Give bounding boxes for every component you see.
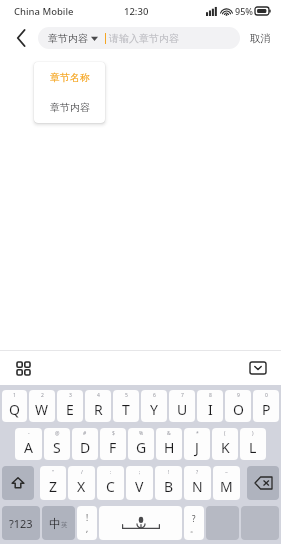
staticText: K <box>221 438 230 457</box>
staticText: 1 <box>13 392 16 399</box>
button[interactable]: " <box>40 466 66 500</box>
staticText: H <box>164 438 175 457</box>
staticText: ? <box>192 513 196 524</box>
staticText: 2 <box>41 392 44 399</box>
staticText: O <box>233 400 244 419</box>
other: Battery <box>255 7 271 15</box>
button[interactable]: - <box>15 428 42 460</box>
button[interactable]: ! <box>155 466 182 500</box>
button[interactable]: & <box>156 428 182 460</box>
staticText: ; <box>139 469 141 476</box>
button[interactable]: / <box>68 466 95 500</box>
staticText: * <box>196 430 199 437</box>
button[interactable]: 3 <box>57 390 83 422</box>
staticText: 3 <box>69 392 72 399</box>
staticText: , <box>86 523 89 534</box>
staticText: 中 <box>49 516 61 531</box>
staticText: 6 <box>153 392 156 399</box>
button[interactable]: 0 <box>253 390 279 422</box>
staticText: 章节名称 <box>50 71 90 84</box>
button[interactable]: ) <box>240 428 266 460</box>
staticText: F <box>109 438 117 457</box>
button[interactable]: # <box>72 428 98 460</box>
staticText: 取消 <box>250 32 271 45</box>
button[interactable]: Switch language <box>42 506 75 540</box>
button[interactable]: Hide keyboard <box>246 356 270 380</box>
staticText: C <box>106 477 115 496</box>
staticText: 95% <box>235 5 253 17</box>
button[interactable]: ? <box>184 506 204 540</box>
staticText: D <box>80 438 91 457</box>
button[interactable]: : <box>97 466 124 500</box>
staticText: P <box>262 400 271 419</box>
staticText: 8 <box>209 392 212 399</box>
button[interactable]: % <box>128 428 154 460</box>
staticText: 请输入章节内容 <box>109 32 179 45</box>
staticText: 0 <box>265 392 268 399</box>
staticText: & <box>167 430 171 437</box>
staticText: ( <box>224 430 226 437</box>
button[interactable]: ( <box>212 428 238 460</box>
staticText: ! <box>168 469 170 476</box>
staticText: " <box>52 469 55 476</box>
staticText: 7 <box>181 392 184 399</box>
staticText: 。 <box>190 524 198 534</box>
button[interactable]: 章节名称 <box>34 62 105 92</box>
button[interactable]: 取消 <box>248 28 273 49</box>
staticText: % <box>139 430 144 437</box>
staticText: : <box>110 469 112 476</box>
button[interactable]: 2 <box>29 390 55 422</box>
staticText: 英 <box>61 521 68 529</box>
staticText: M <box>220 477 233 496</box>
staticText: 12:30 <box>124 5 149 18</box>
staticText: ! <box>86 512 89 523</box>
button[interactable]: ! <box>77 506 97 540</box>
staticText: G <box>136 438 147 457</box>
staticText: Z <box>49 477 58 496</box>
button[interactable]: 6 <box>141 390 167 422</box>
staticText: S <box>53 438 61 457</box>
staticText: ? <box>196 469 199 476</box>
button[interactable]: ; <box>126 466 153 500</box>
button[interactable]: 章节内容 <box>38 27 240 49</box>
staticText: W <box>35 400 49 419</box>
staticText: B <box>164 477 174 496</box>
button[interactable]: 7 <box>169 390 195 422</box>
button[interactable]: More apps <box>11 356 35 380</box>
button[interactable]: 4 <box>85 390 111 422</box>
button[interactable]: * <box>184 428 210 460</box>
staticText: X <box>77 477 86 496</box>
staticText: # <box>83 430 87 437</box>
button[interactable]: Back <box>10 27 32 49</box>
button[interactable]: ?123 <box>2 506 40 540</box>
button[interactable]: 9 <box>225 390 251 422</box>
button[interactable]: 1 <box>2 390 27 422</box>
staticText: R <box>94 400 103 419</box>
button[interactable]: Space <box>99 506 182 540</box>
staticText: 章节内容 <box>48 32 88 45</box>
staticText: - <box>28 430 30 437</box>
staticText: L <box>249 438 257 457</box>
button[interactable]: Shift <box>2 466 34 500</box>
button[interactable]: 5 <box>113 390 139 422</box>
staticText: 4 <box>97 392 100 399</box>
other: Signal <box>206 7 218 16</box>
staticText: N <box>192 477 203 496</box>
staticText: U <box>177 400 188 419</box>
button[interactable]: ? <box>184 466 211 500</box>
button[interactable]: Backspace <box>247 466 279 500</box>
staticText: ~ <box>225 469 228 476</box>
button[interactable]: $ <box>100 428 126 460</box>
button[interactable]: 章节内容 <box>34 92 105 123</box>
staticText: China Mobile <box>14 5 74 18</box>
staticText: 章节内容 <box>50 101 90 114</box>
staticText: A <box>24 438 33 457</box>
button[interactable]: @ <box>44 428 70 460</box>
button[interactable]: 8 <box>197 390 223 422</box>
button[interactable]: ~ <box>213 466 240 500</box>
staticText: $ <box>112 430 115 437</box>
other: Wi-Fi <box>221 7 232 16</box>
staticText: @ <box>55 430 60 437</box>
